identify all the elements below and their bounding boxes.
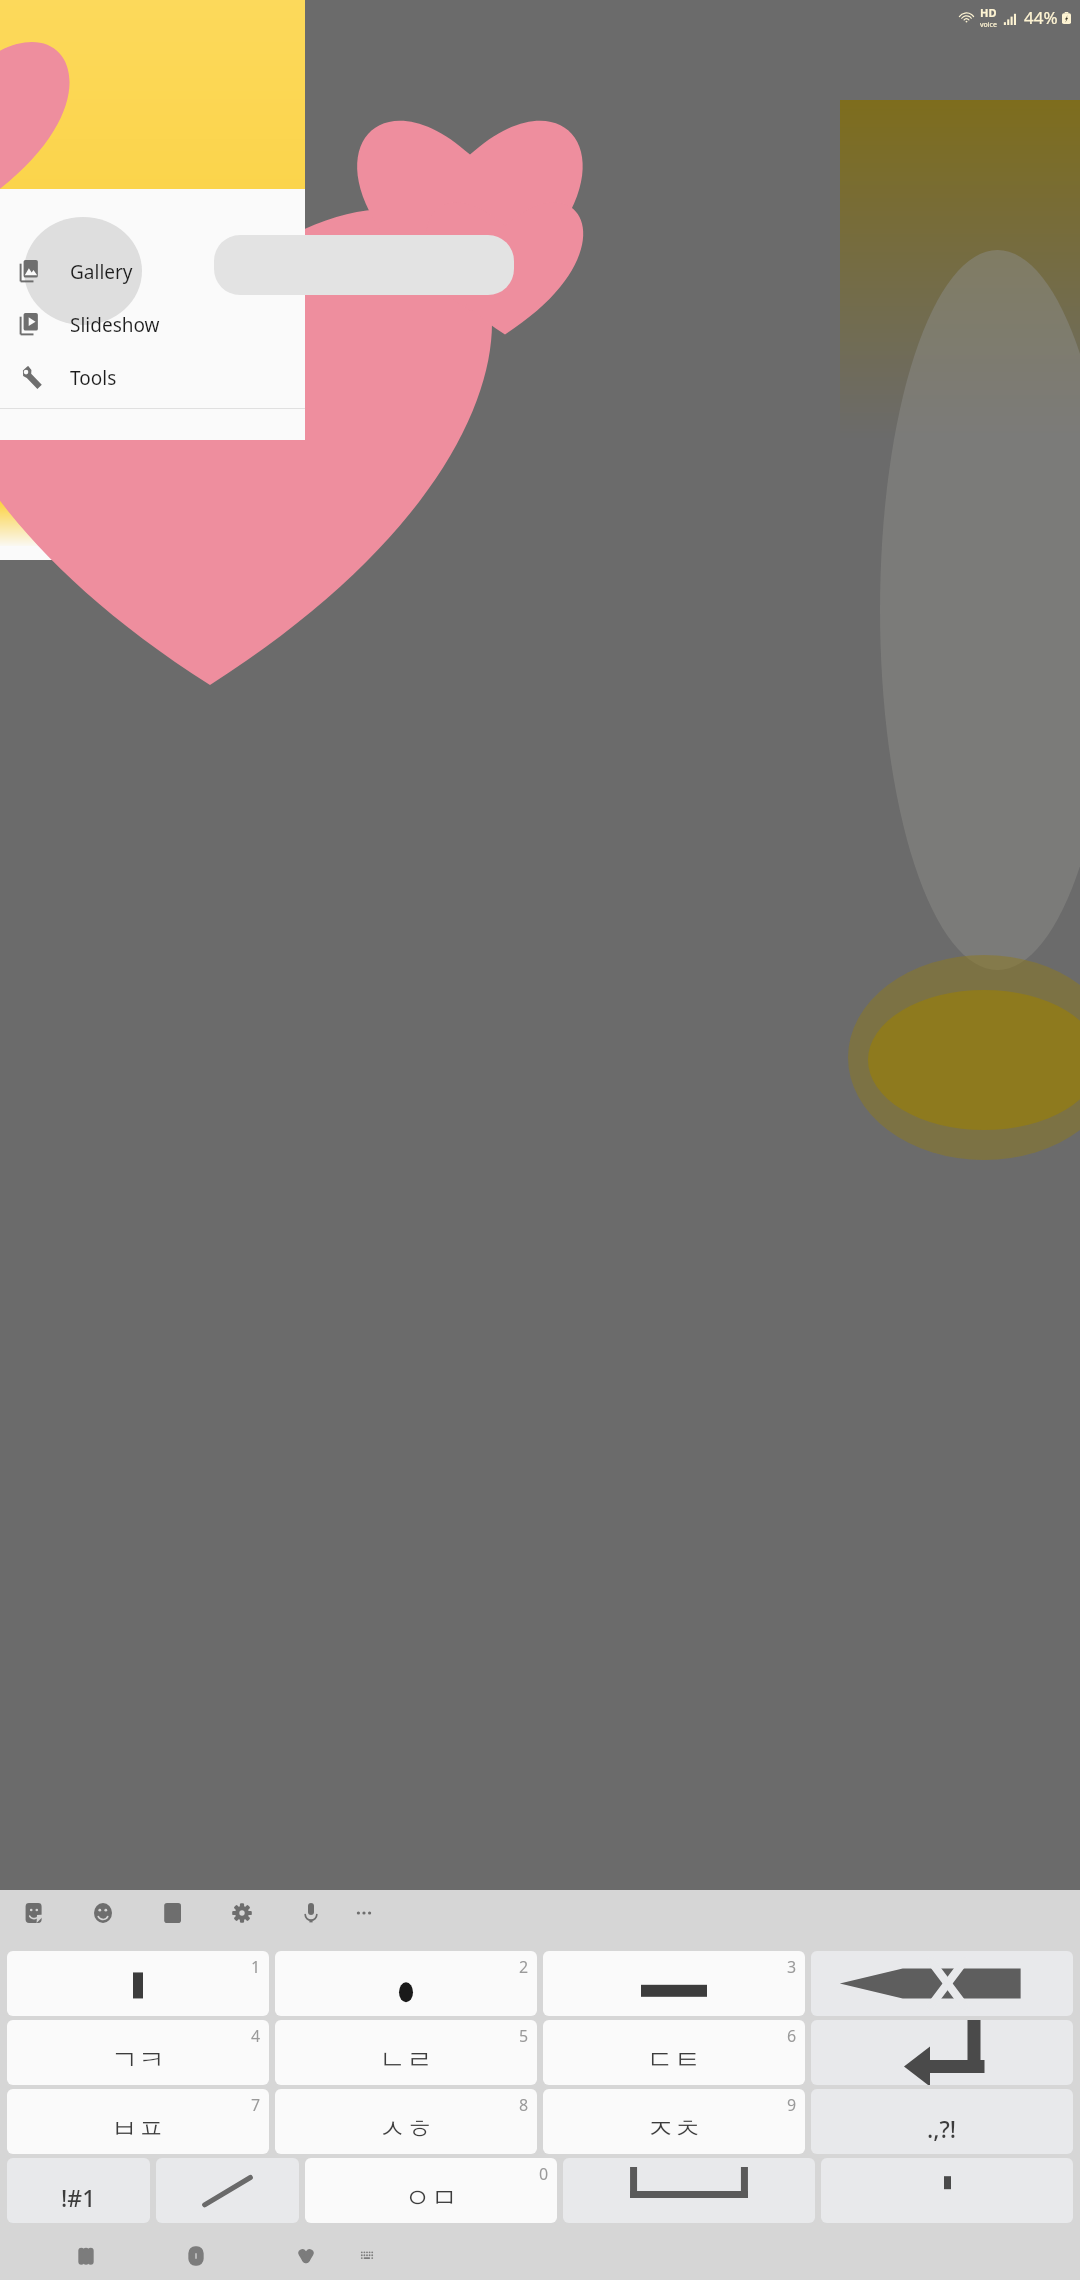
staticText: Gallery (70, 259, 133, 285)
button[interactable]: ㄴㄹ (275, 2020, 537, 2085)
staticText: ㄱㅋ (111, 2043, 165, 2077)
button[interactable]: Horizontal stroke (543, 1951, 805, 2016)
button[interactable]: ㄷㅌ (543, 2020, 805, 2085)
button[interactable]: Vertical stroke (7, 1951, 269, 2016)
button[interactable]: More options (344, 1893, 384, 1933)
staticText: ㅅㅎ (379, 2112, 433, 2146)
button[interactable]: Apostrophe (821, 2158, 1073, 2223)
staticText: ㄷㅌ (647, 2043, 701, 2077)
staticText: 0 (539, 2163, 549, 2185)
staticText: !#1 (61, 2182, 96, 2213)
button[interactable]: Emoji (83, 1893, 123, 1933)
staticText: 8 (519, 2094, 529, 2116)
button[interactable]: Home (174, 2234, 218, 2278)
staticText: ㅂㅍ (111, 2112, 165, 2146)
button[interactable]: Enter (811, 2020, 1073, 2085)
button[interactable]: .,?! (811, 2089, 1073, 2154)
staticText: ㄴㄹ (379, 2043, 433, 2077)
staticText: 5 (519, 2025, 529, 2047)
button[interactable]: ㅇㅁ (305, 2158, 557, 2223)
button[interactable]: Stickers (15, 1893, 55, 1933)
button[interactable]: GIF keyboard (153, 1893, 193, 1933)
staticText: ㅇㅁ (404, 2181, 458, 2215)
button[interactable]: Change keyboard (345, 2234, 389, 2278)
staticText: 4 (251, 2025, 261, 2047)
staticText: 2 (519, 1956, 529, 1978)
staticText: 1 (251, 1956, 261, 1978)
staticText: 44% (1024, 6, 1058, 29)
button[interactable]: Voice input (291, 1893, 331, 1933)
staticText: 9 (787, 2094, 797, 2116)
staticText: voice (980, 20, 997, 30)
button[interactable]: ㅂㅍ (7, 2089, 269, 2154)
staticText: Slideshow (70, 312, 160, 338)
button[interactable]: Dot (275, 1951, 537, 2016)
button[interactable]: Space (563, 2158, 815, 2223)
button[interactable]: ㄱㅋ (7, 2020, 269, 2085)
staticText: HD (980, 5, 997, 20)
staticText: 3 (787, 1956, 797, 1978)
button[interactable]: Korean English toggle (156, 2158, 299, 2223)
button[interactable]: Recent apps (64, 2234, 108, 2278)
button[interactable]: Backspace (811, 1951, 1073, 2016)
button[interactable]: ㅅㅎ (275, 2089, 537, 2154)
staticText: 7 (251, 2094, 261, 2116)
button[interactable]: Gallery (0, 245, 305, 298)
staticText: .,?! (927, 2113, 957, 2144)
button[interactable]: ㅈㅊ (543, 2089, 805, 2154)
button[interactable]: Hide keyboard (284, 2234, 328, 2278)
button[interactable]: Tools (0, 351, 305, 404)
button[interactable]: Settings (222, 1893, 262, 1933)
button[interactable]: Slideshow (0, 298, 305, 351)
button[interactable]: !#1 (7, 2158, 150, 2223)
staticText: 6 (787, 2025, 797, 2047)
staticText: ㅈㅊ (647, 2112, 701, 2146)
staticText: Tools (70, 365, 117, 391)
